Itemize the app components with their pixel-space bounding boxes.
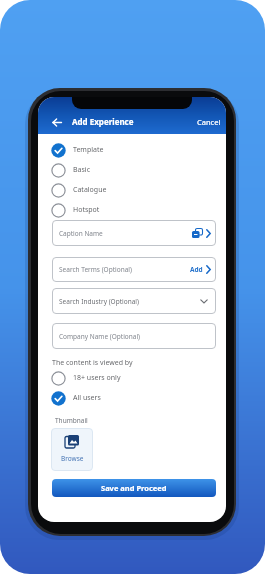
staticText: The content is viewed by [52,358,133,368]
button[interactable]: Company Name (Optional) [52,323,216,349]
button[interactable]: Cancel [197,117,221,127]
staticText: All users [73,393,101,403]
staticText: Template [73,145,104,155]
staticText: Save and Proceed [101,483,167,493]
button[interactable]: Template [51,140,226,160]
staticText: Search Terms (Optional) [59,265,132,274]
button[interactable]: Browse [51,428,93,471]
staticText: Hotspot [73,205,100,215]
button[interactable]: All users [51,388,226,408]
staticText: Add Experience [72,116,134,127]
staticText: Browse [61,454,84,463]
staticText: Basic [73,165,90,175]
button[interactable]: Caption Name [52,220,216,246]
staticText: Cancel [197,117,221,127]
button[interactable]: Basic [51,160,226,180]
button[interactable]: Search Industry (Optional) [52,288,216,314]
staticText: Catalogue [73,185,107,195]
staticText: Add [190,265,203,274]
staticText: 18+ users only [73,373,121,383]
button[interactable]: Save and Proceed [52,479,216,497]
staticText: Thumbnail [55,416,88,425]
button[interactable]: Catalogue [51,180,226,200]
button[interactable]: Hotspot [51,200,226,220]
staticText: Company Name (Optional) [59,332,141,341]
button[interactable]: Search Terms (Optional) [52,257,216,282]
staticText: Search Industry (Optional) [59,297,139,306]
staticText: Caption Name [59,229,103,238]
button[interactable] [50,115,64,129]
button[interactable]: 18+ users only [51,368,226,388]
